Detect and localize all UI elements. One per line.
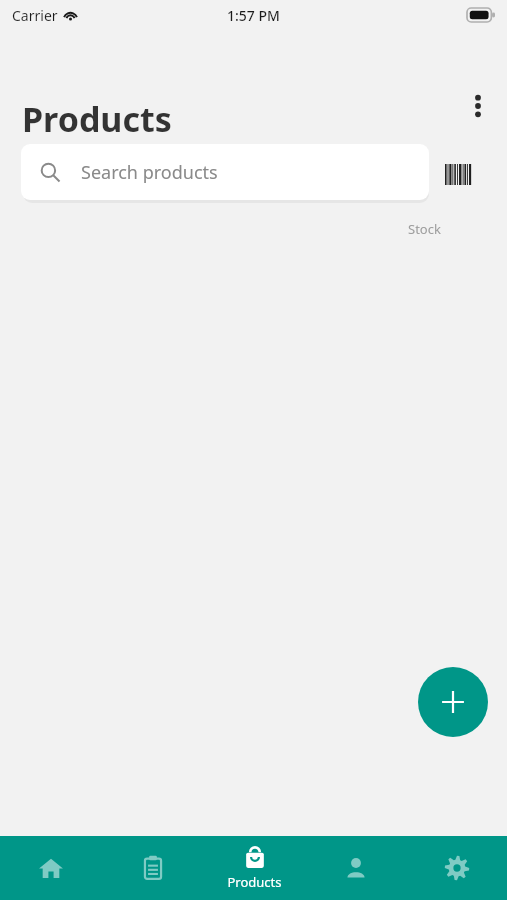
button[interactable]: Scan barcode xyxy=(436,152,480,196)
button[interactable]: Settings xyxy=(406,836,507,900)
button[interactable]: More options xyxy=(456,84,500,128)
button[interactable]: Orders xyxy=(102,836,204,900)
button[interactable]: Home xyxy=(0,836,102,900)
button[interactable]: Search products xyxy=(21,144,429,200)
button[interactable]: Add product xyxy=(418,667,488,737)
button[interactable]: Products xyxy=(204,836,305,900)
staticText: Search products xyxy=(81,160,218,185)
staticText: 1:57 PM xyxy=(227,6,280,25)
staticText: Carrier xyxy=(12,6,58,25)
staticText: Products xyxy=(227,873,282,891)
staticText: Stock xyxy=(408,220,441,238)
staticText: Products xyxy=(22,96,172,142)
button[interactable]: Profile xyxy=(305,836,406,900)
